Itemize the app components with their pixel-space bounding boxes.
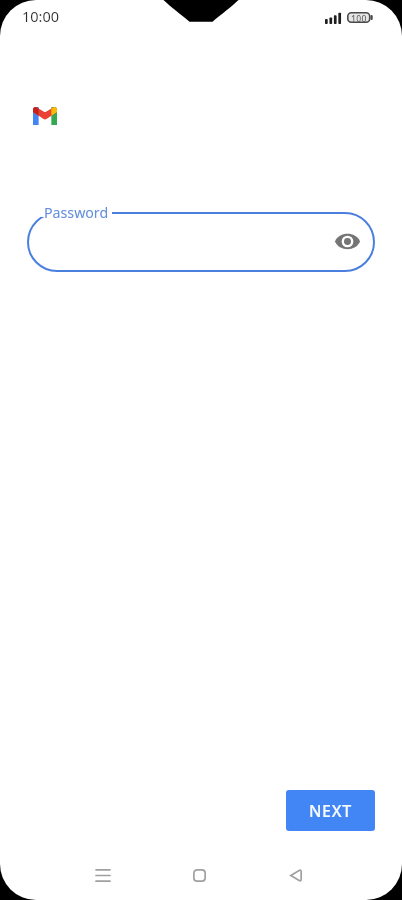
staticText: 10:00 bbox=[22, 6, 60, 26]
button[interactable]: Home bbox=[175, 851, 223, 899]
button[interactable]: Back bbox=[271, 851, 319, 899]
button[interactable]: Recent apps bbox=[79, 851, 127, 899]
button[interactable]: NEXT bbox=[286, 790, 375, 831]
staticText: Password bbox=[44, 203, 109, 222]
button[interactable]: Show password bbox=[323, 217, 371, 265]
staticText: NEXT bbox=[309, 800, 352, 822]
staticText: 100 bbox=[351, 13, 367, 24]
